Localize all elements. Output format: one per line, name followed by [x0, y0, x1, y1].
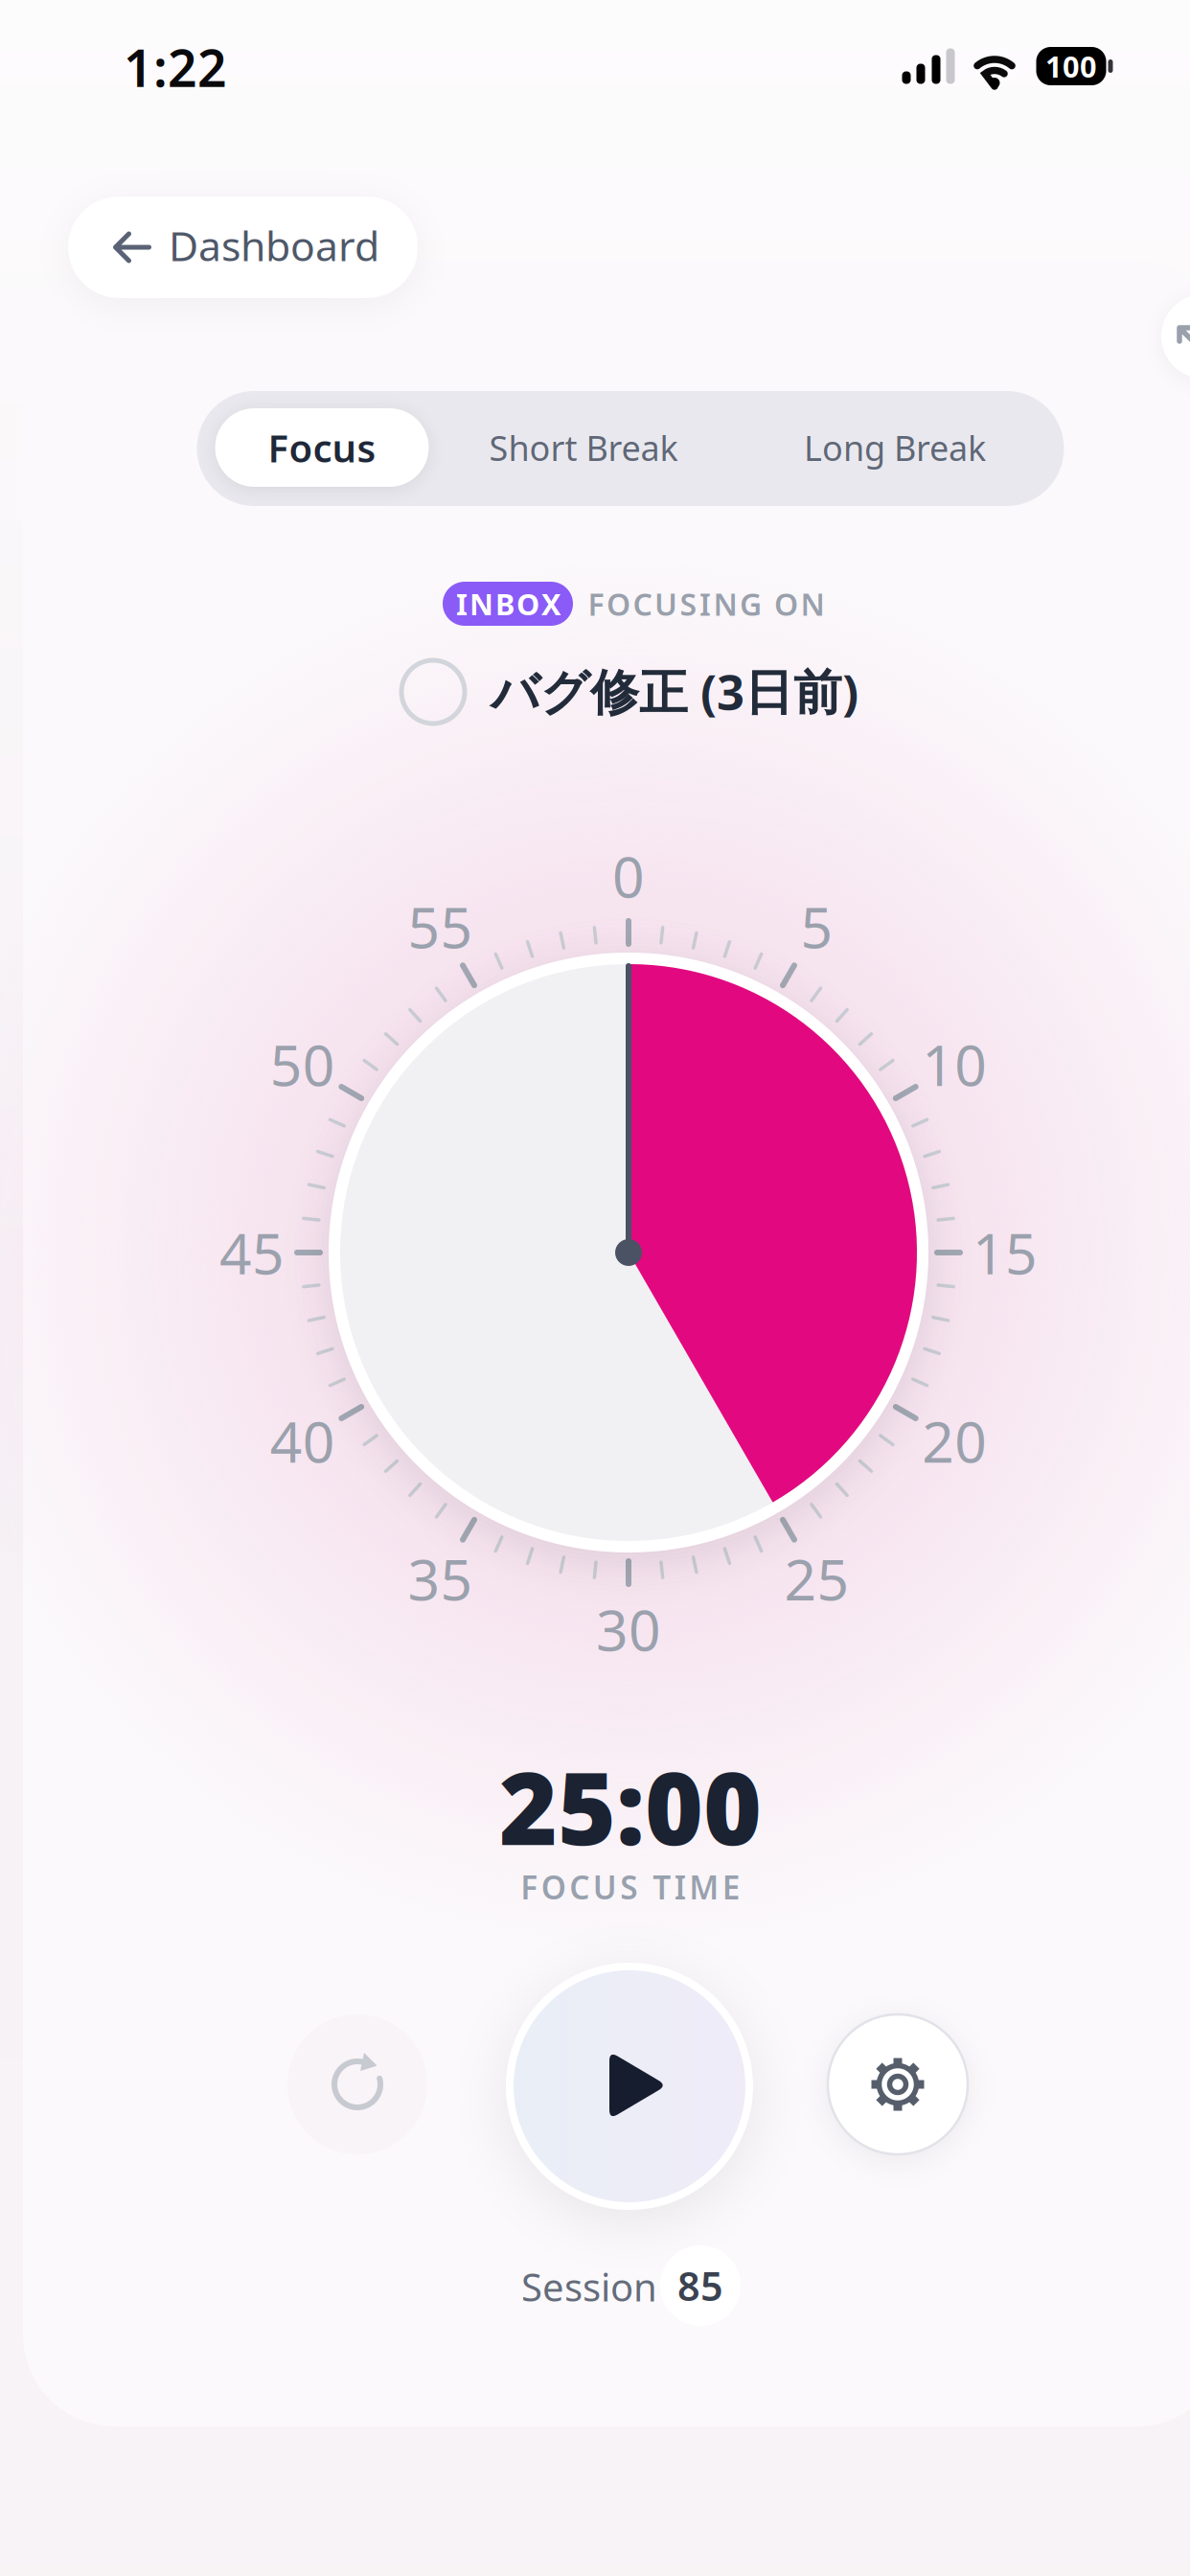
button[interactable]: Dashboard [68, 196, 418, 298]
button[interactable]: Settings [828, 2014, 968, 2154]
staticText: Long Break [804, 425, 986, 470]
button[interactable]: Short Break [440, 394, 727, 501]
button[interactable]: Start [510, 1966, 749, 2206]
staticText: バグ修正 (3日前) [491, 659, 858, 723]
button[interactable]: バグ修正 (3日前) [399, 655, 858, 728]
staticText: 25 [784, 1541, 849, 1616]
staticText: Dashboard [169, 218, 379, 273]
staticText: 45 [219, 1215, 285, 1290]
button[interactable]: Expand [1161, 294, 1190, 379]
staticText: FOCUS TIME [520, 1866, 740, 1908]
button[interactable]: Focus [215, 408, 429, 487]
button[interactable]: Long Break [751, 394, 1039, 501]
staticText: 0 [612, 839, 645, 913]
button[interactable]: Reset [287, 2014, 427, 2154]
staticText: Session [521, 2261, 657, 2312]
staticText: 5 [801, 889, 833, 964]
staticText: 20 [922, 1403, 987, 1478]
staticText: 40 [270, 1403, 335, 1478]
staticText: 100 [1045, 47, 1097, 86]
staticText: 15 [973, 1215, 1038, 1290]
staticText: Focus [268, 422, 376, 473]
staticText: 25:00 [499, 1740, 762, 1873]
staticText: 50 [270, 1027, 335, 1102]
staticText: 85 [677, 2259, 723, 2312]
staticText: 10 [922, 1027, 987, 1102]
staticText: 35 [408, 1541, 473, 1616]
staticText: Short Break [489, 425, 678, 470]
staticText: 30 [596, 1592, 661, 1666]
staticText: FOCUSING ON [588, 583, 824, 624]
staticText: 55 [408, 889, 473, 964]
staticText: INBOX [456, 584, 561, 623]
staticText: 1:22 [124, 33, 227, 101]
